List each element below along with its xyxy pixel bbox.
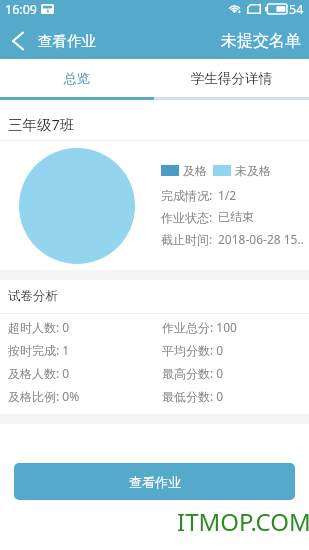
staticText: 总览: [64, 70, 90, 86]
button[interactable]: Back: [0, 22, 34, 59]
button[interactable]: 总览: [0, 59, 154, 97]
staticText: 2018-06-28 15..: [218, 231, 304, 247]
staticText: 54: [289, 1, 304, 18]
staticText: 及格人数: 0: [8, 365, 70, 381]
staticText: 超时人数: 0: [8, 319, 70, 335]
staticText: 已结束: [218, 209, 254, 224]
staticText: 试卷分析: [8, 288, 58, 304]
staticText: 完成情况:: [161, 187, 213, 203]
staticText: 截止时间:: [161, 231, 213, 247]
staticText: 及格: [183, 163, 207, 178]
staticText: 按时完成: 1: [8, 342, 70, 358]
staticText: 最高分数: 0: [162, 365, 224, 381]
staticText: 未及格: [235, 163, 271, 178]
staticText: 最低分数: 0: [162, 388, 224, 404]
staticText: 16:09: [5, 1, 37, 18]
button[interactable]: 查看作业: [14, 463, 295, 500]
staticText: 作业状态:: [161, 209, 213, 225]
staticText: 未提交名单: [221, 31, 301, 51]
staticText: ITMOP.COM: [177, 505, 309, 538]
staticText: 学生得分详情: [191, 70, 272, 87]
button[interactable]: 未提交名单: [211, 22, 309, 59]
staticText: 及格比例: 0%: [8, 388, 80, 404]
staticText: 1/2: [218, 187, 237, 203]
staticText: 查看作业: [129, 474, 181, 490]
staticText: 三年级7班: [8, 114, 75, 134]
button[interactable]: 学生得分详情: [154, 59, 309, 97]
staticText: 查看作业: [38, 32, 96, 50]
staticText: 作业总分: 100: [162, 319, 237, 335]
staticText: 平均分数: 0: [162, 342, 224, 358]
